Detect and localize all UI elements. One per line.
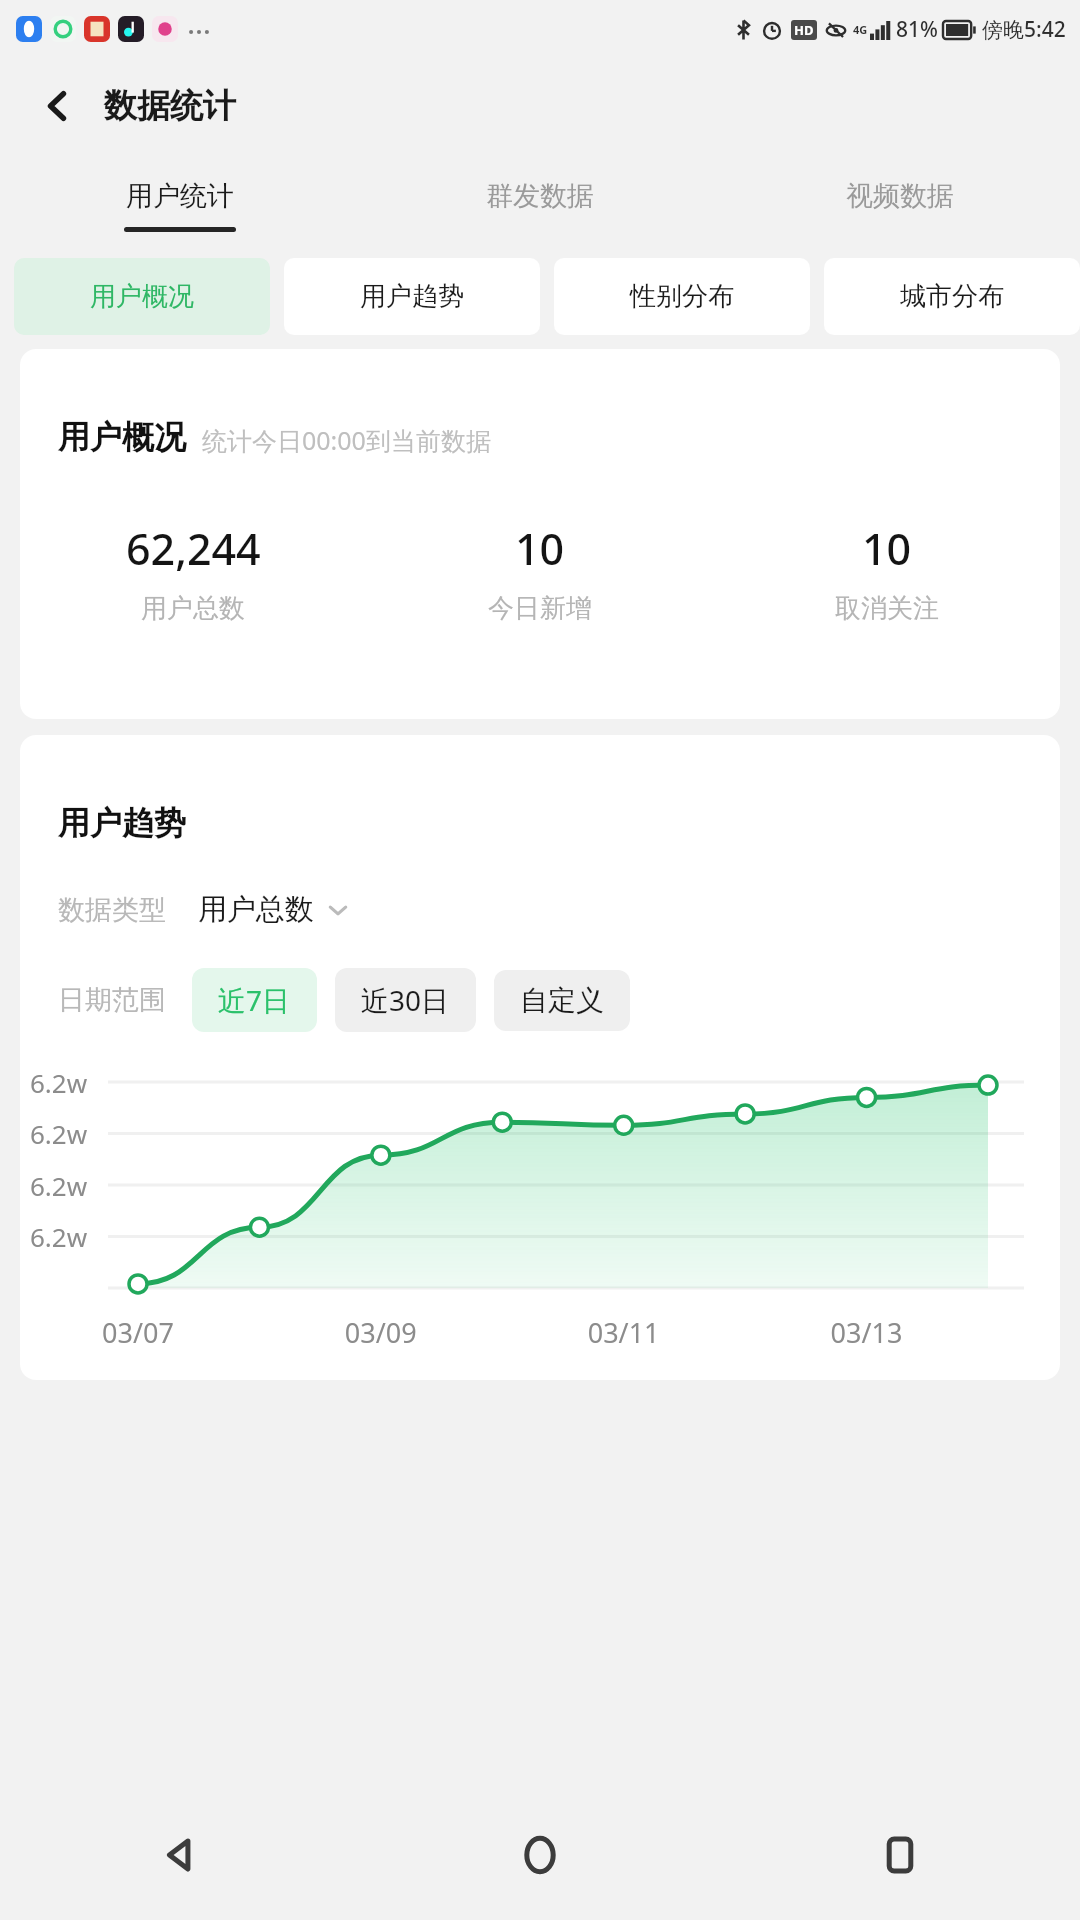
button[interactable]: 自定义 (494, 970, 630, 1031)
staticText: 性别分布 (630, 280, 734, 313)
staticText: 10 (862, 519, 912, 578)
staticText: 用户总数 (198, 891, 314, 928)
staticText: 用户概况 (58, 417, 186, 457)
button[interactable]: 用户趋势 (284, 258, 540, 335)
staticText: 用户趋势 (58, 803, 186, 843)
staticText: 数据统计 (104, 85, 236, 127)
button[interactable]: 性别分布 (554, 258, 810, 335)
staticText: 今日新增 (488, 592, 592, 625)
button[interactable]: 返回 (28, 76, 88, 136)
staticText: 用户趋势 (360, 280, 464, 313)
staticText: 用户统计 (126, 179, 234, 213)
staticText: 城市分布 (900, 280, 1004, 313)
staticText: 取消关注 (835, 592, 939, 625)
staticText: 10 (515, 519, 565, 578)
button[interactable]: 主页 (360, 1790, 720, 1920)
button[interactable]: 返回 (0, 1790, 360, 1920)
button[interactable]: 群发数据 (360, 153, 720, 258)
button[interactable]: 视频数据 (720, 153, 1080, 258)
staticText: 统计今日00:00到当前数据 (202, 423, 491, 457)
staticText: 4G (853, 22, 868, 37)
button[interactable]: 最近任务 (720, 1790, 1080, 1920)
staticText: 81% (896, 15, 938, 44)
button[interactable]: 近30日 (335, 968, 476, 1032)
staticText: 近7日 (218, 981, 291, 1019)
button[interactable]: 用户总数 (198, 891, 350, 928)
button[interactable]: 城市分布 (824, 258, 1080, 335)
staticText: 近30日 (361, 981, 450, 1019)
staticText: 自定义 (520, 983, 604, 1018)
staticText: 群发数据 (486, 179, 594, 213)
staticText: 日期范围 (58, 983, 166, 1017)
staticText: 用户概况 (90, 280, 194, 313)
staticText: 62,244 (126, 519, 261, 578)
button[interactable]: 近7日 (192, 968, 317, 1032)
staticText: 视频数据 (846, 179, 954, 213)
button[interactable]: 用户概况 (14, 258, 270, 335)
button[interactable]: 用户统计 (0, 153, 360, 258)
staticText: HD (794, 21, 814, 39)
staticText: 数据类型 (58, 893, 166, 927)
staticText: 傍晚5:42 (982, 15, 1066, 44)
staticText: 用户总数 (141, 592, 245, 625)
